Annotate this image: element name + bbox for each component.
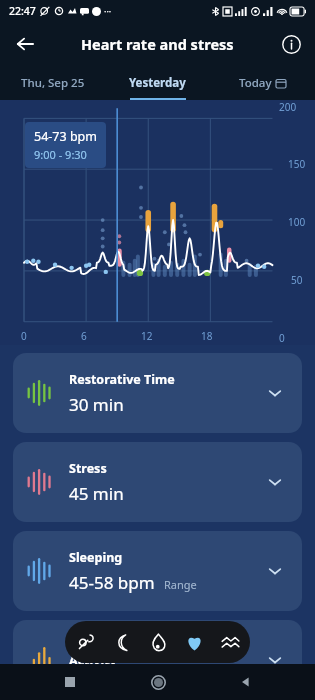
button[interactable]: Restorative Time [13, 353, 302, 433]
button[interactable]: Home [141, 665, 175, 699]
staticText: 18 [201, 329, 213, 343]
button[interactable]: Back [8, 27, 42, 61]
button[interactable]: Wellness [69, 626, 101, 658]
button[interactable]: Expand Sleeping [262, 558, 288, 584]
staticText: Today [239, 75, 272, 91]
staticText: 12 [141, 329, 153, 343]
button[interactable]: Back [228, 665, 262, 699]
button[interactable]: Sleeping [13, 531, 302, 611]
staticText: 0 [279, 331, 285, 345]
staticText: 150 [288, 157, 306, 171]
button[interactable]: Info [275, 28, 307, 60]
staticText: Sleeping [69, 549, 123, 566]
staticText: Range [164, 577, 197, 592]
button[interactable]: Trends [214, 626, 246, 658]
staticText: 100 [288, 215, 306, 229]
staticText: Heart rate and stress [81, 34, 234, 54]
button[interactable]: Calories [142, 626, 174, 658]
button[interactable]: Expand Stress [262, 469, 288, 495]
staticText: Activity [69, 652, 117, 669]
staticText: 50 [291, 273, 303, 287]
button[interactable]: Expand Activity [262, 647, 288, 673]
staticText: 45-58 bpm [69, 571, 155, 594]
staticText: 6 [81, 329, 87, 343]
button[interactable]: Thu, Sep 25 [0, 66, 105, 100]
button[interactable]: Activity [13, 620, 302, 700]
staticText: ··· [104, 5, 112, 17]
staticText: Yesterday [129, 75, 186, 91]
staticText: Thu, Sep 25 [21, 75, 85, 91]
staticText: 22:47 [9, 4, 36, 18]
button[interactable]: Sleep [105, 626, 137, 658]
staticText: 45 min [69, 482, 124, 505]
button[interactable]: Yesterday [105, 66, 210, 100]
staticText: 200 [279, 100, 297, 114]
staticText: 9:00 - 9:30 [34, 147, 87, 162]
staticText: 54-73 bpm [34, 128, 97, 145]
staticText: 0 [21, 329, 27, 343]
button[interactable]: Expand Restorative Time [262, 380, 288, 406]
button[interactable]: Stress [13, 442, 302, 522]
button[interactable]: Today [210, 66, 315, 100]
staticText: Stress [69, 460, 107, 477]
staticText: Restorative Time [69, 371, 175, 388]
staticText: 30 min [69, 393, 124, 416]
button[interactable]: Recents [53, 665, 87, 699]
button[interactable]: Heart rate [178, 626, 210, 658]
